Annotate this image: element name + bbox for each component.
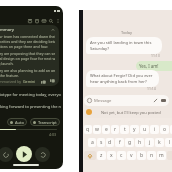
button[interactable]: Attach <box>153 98 158 103</box>
button[interactable]: v <box>127 151 136 160</box>
button[interactable]: Camera <box>161 98 166 103</box>
staticText: u <box>143 126 147 133</box>
button[interactable]: a <box>88 138 96 147</box>
button[interactable]: p <box>170 125 172 134</box>
staticText: Summary <box>0 27 14 33</box>
staticText: What about Fergie? Did you ever hear any… <box>90 73 153 84</box>
staticText: e <box>105 126 108 133</box>
staticText: a <box>91 139 94 146</box>
staticText: k <box>158 139 161 146</box>
button[interactable]: g <box>125 138 134 147</box>
staticText: Transcript <box>38 120 57 125</box>
button[interactable]: What about Fergie? Did you ever hear any… <box>86 70 159 87</box>
staticText: j <box>149 139 151 146</box>
staticText: Looking forward to presenting the new de… <box>0 104 61 109</box>
button[interactable]: z <box>97 151 106 160</box>
button[interactable]: n <box>147 151 156 160</box>
staticText: Are you still landing in town this Satur… <box>90 40 152 51</box>
staticText: x <box>110 152 113 159</box>
staticText: Message <box>94 98 112 104</box>
button[interactable]: r <box>111 125 119 134</box>
staticText: final design on page four for next week'… <box>0 56 55 61</box>
staticText: h <box>138 139 142 146</box>
staticText: big launch. <box>0 61 14 66</box>
staticText: l <box>169 139 171 146</box>
button[interactable]: x <box>107 151 116 160</box>
staticText: b <box>140 152 144 159</box>
button[interactable]: Forward 10 seconds <box>35 147 50 162</box>
staticText: 11:13 <box>151 53 160 58</box>
button[interactable]: m <box>157 151 166 160</box>
staticText: c <box>120 152 123 159</box>
staticText: Auto <box>15 120 24 125</box>
staticText: They are also planning to add an animati… <box>0 68 55 73</box>
button[interactable]: i <box>150 125 159 134</box>
staticText: Gemini <box>23 79 36 84</box>
staticText: 11:14 <box>147 86 156 91</box>
button[interactable]: Search <box>47 17 54 24</box>
button[interactable]: h <box>135 138 144 147</box>
staticText: g <box>128 139 132 146</box>
staticText: f <box>119 139 121 146</box>
button[interactable]: d <box>106 138 114 147</box>
staticText: Not yet, but I'll keep you posted <box>101 110 161 115</box>
staticText: w <box>95 126 99 133</box>
button[interactable]: u <box>140 125 149 134</box>
staticText: Summarized by <box>0 79 23 84</box>
button[interactable]: q <box>84 125 92 134</box>
button[interactable]: Mark unread <box>40 17 47 24</box>
staticText: options on page three and four. <box>0 44 49 49</box>
button[interactable]: Delete <box>33 17 40 24</box>
staticText: Today <box>121 30 133 35</box>
button[interactable]: t <box>120 125 129 134</box>
staticText: t <box>124 126 126 133</box>
button[interactable]: Yes, I am! <box>136 61 172 71</box>
button[interactable]: Are you still landing in town this Satur… <box>86 37 162 54</box>
button[interactable]: Transcript <box>30 118 60 126</box>
staticText: Yes, I am! <box>139 63 159 69</box>
staticText: q <box>86 126 90 133</box>
button[interactable]: Play <box>16 146 32 162</box>
button[interactable]: e <box>102 125 110 134</box>
staticText: r <box>114 126 117 133</box>
button[interactable]: Message <box>84 95 169 106</box>
staticText: m <box>159 152 164 159</box>
staticText: They are proposing that they can send th… <box>0 51 55 56</box>
button[interactable]: Replay 10 seconds <box>0 147 13 162</box>
button[interactable]: Summary <box>0 25 59 86</box>
button[interactable]: j <box>145 138 154 147</box>
button[interactable]: y <box>130 125 139 134</box>
button[interactable]: s <box>97 138 105 147</box>
button[interactable]: f <box>115 138 124 147</box>
staticText: v <box>130 152 133 159</box>
staticText: 4:03 <box>49 132 57 137</box>
button[interactable]: Auto <box>7 118 27 126</box>
button[interactable]: Good <box>41 79 46 84</box>
button[interactable]: Archive <box>26 17 33 24</box>
staticText: z <box>100 152 103 159</box>
staticText: i <box>154 126 156 133</box>
staticText: Your team has connected down their top <box>0 34 55 39</box>
staticText: to the feature. <box>0 73 20 78</box>
staticText: d <box>108 139 112 146</box>
staticText: prototype for meeting today, everyone. <box>0 92 61 97</box>
staticText: n <box>150 152 154 159</box>
button[interactable]: Shift <box>84 151 96 160</box>
button[interactable]: w <box>93 125 101 134</box>
staticText: priorities and they are deciding between… <box>0 39 55 44</box>
button[interactable]: o <box>160 125 169 134</box>
button[interactable]: l <box>165 138 172 147</box>
staticText: o <box>163 126 167 133</box>
button[interactable]: More options <box>54 17 61 24</box>
button[interactable]: k <box>155 138 164 147</box>
button[interactable]: b <box>137 151 146 160</box>
button[interactable]: c <box>117 151 126 160</box>
staticText: s <box>100 139 103 146</box>
staticText: y <box>133 126 136 133</box>
button[interactable]: Bad <box>50 79 55 84</box>
